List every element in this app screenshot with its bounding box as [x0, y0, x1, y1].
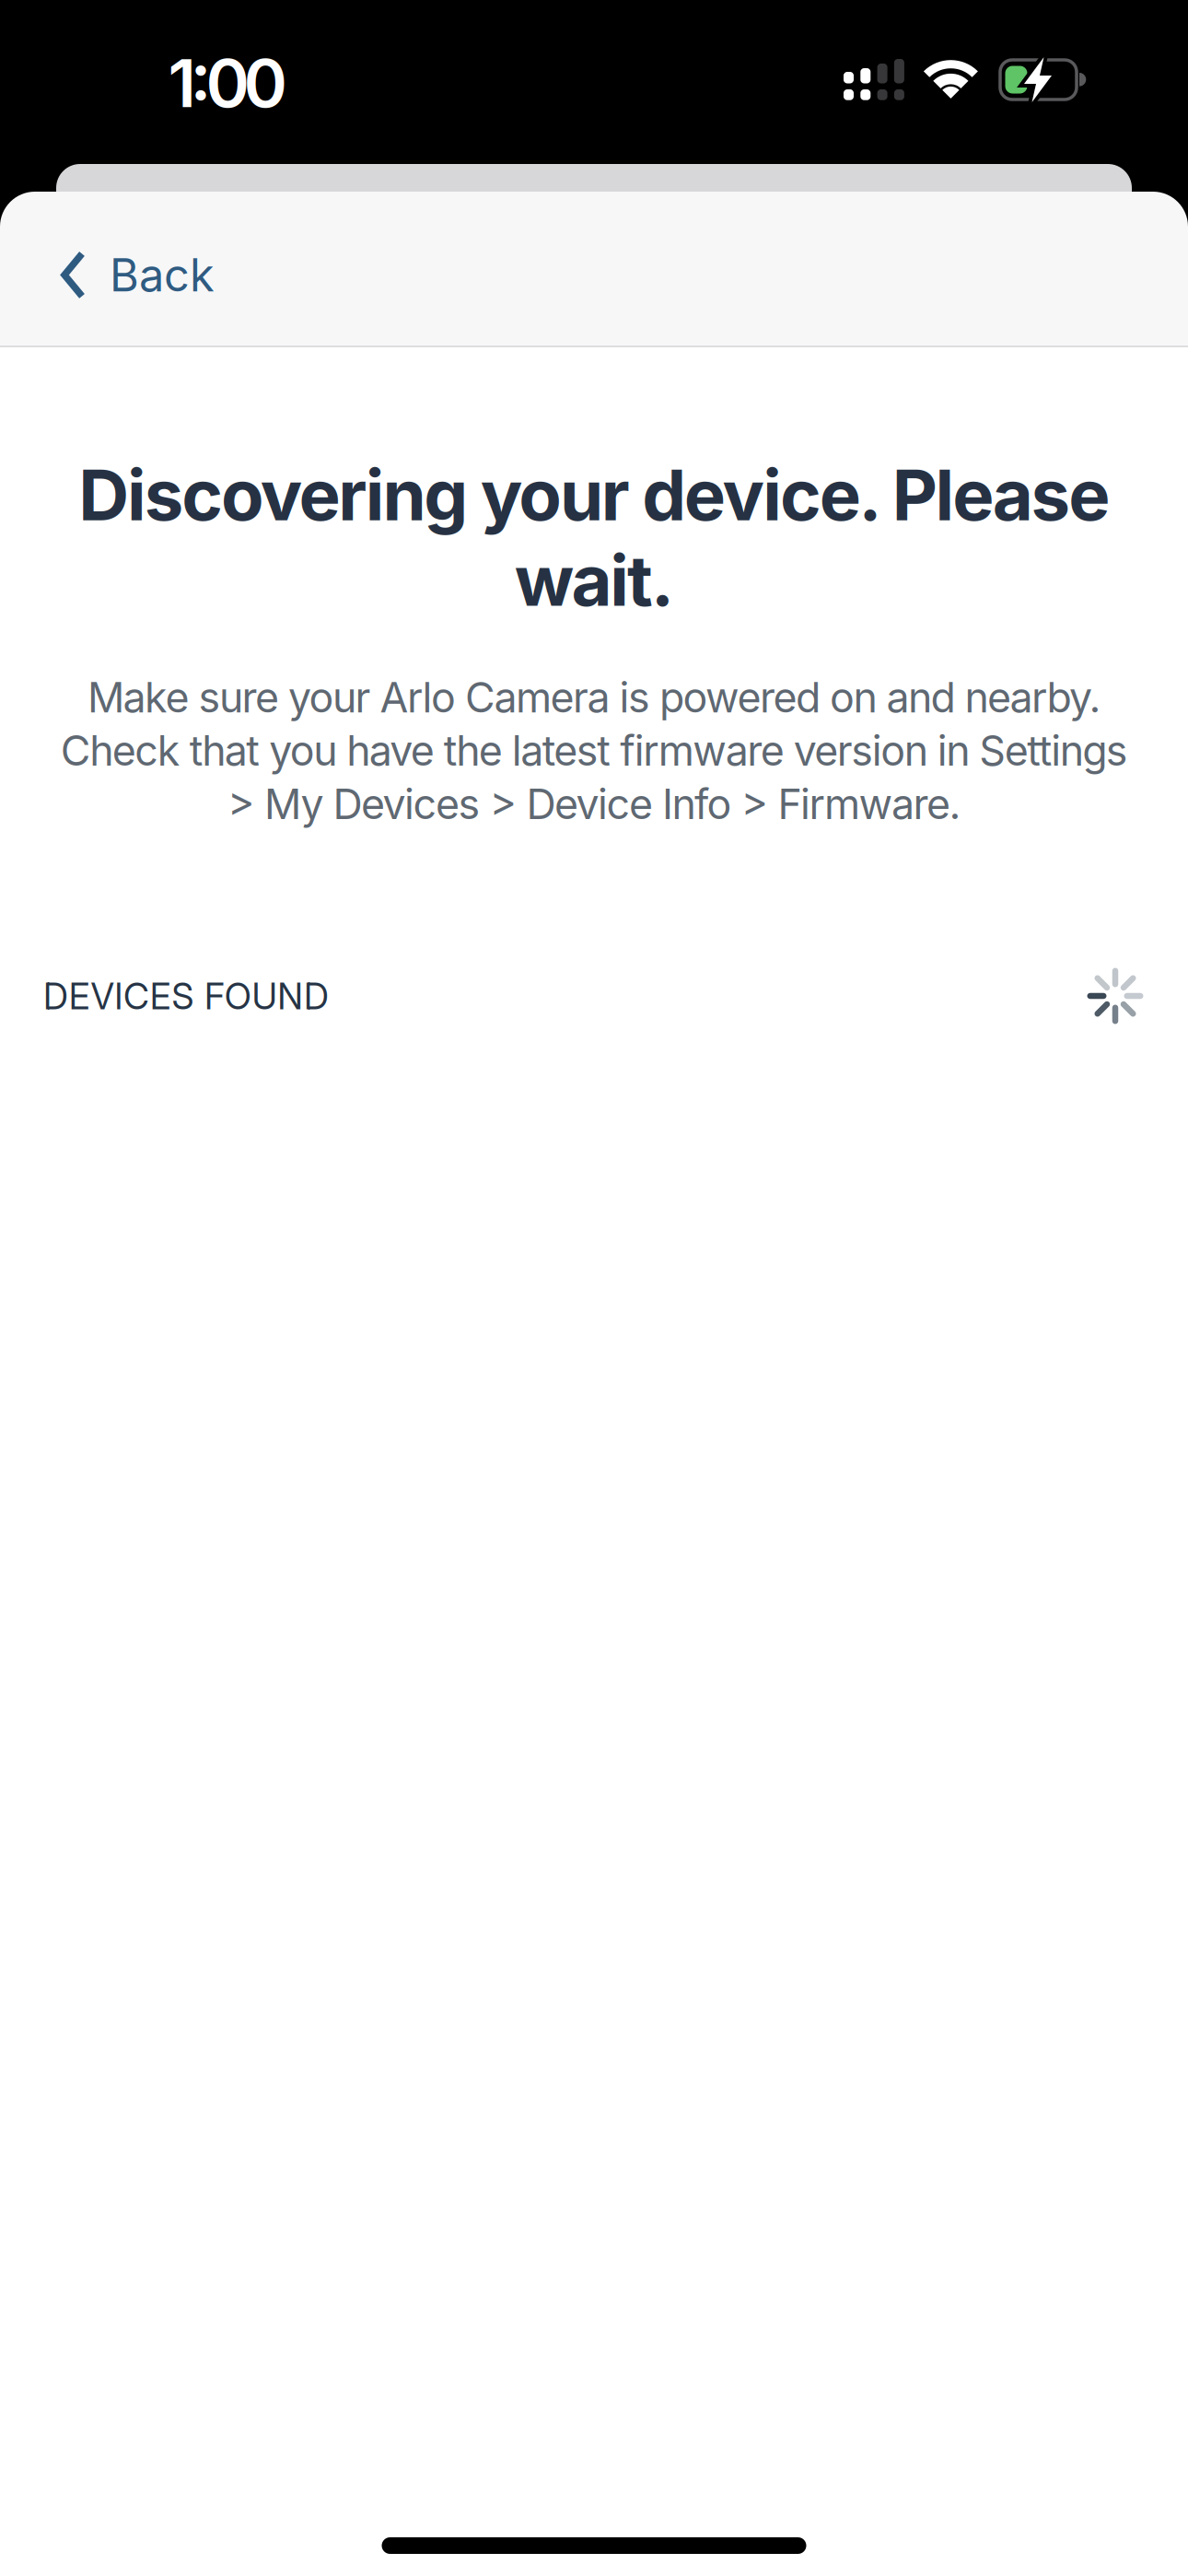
button[interactable]: Back: [62, 248, 215, 302]
staticText: Discovering your device. Please wait.: [78, 452, 1110, 623]
staticText: Make sure your Arlo Camera is powered on…: [60, 673, 1128, 829]
staticText: 1:00: [168, 43, 287, 123]
staticText: DEVICES FOUND: [43, 975, 329, 1018]
staticText: Back: [110, 248, 215, 302]
